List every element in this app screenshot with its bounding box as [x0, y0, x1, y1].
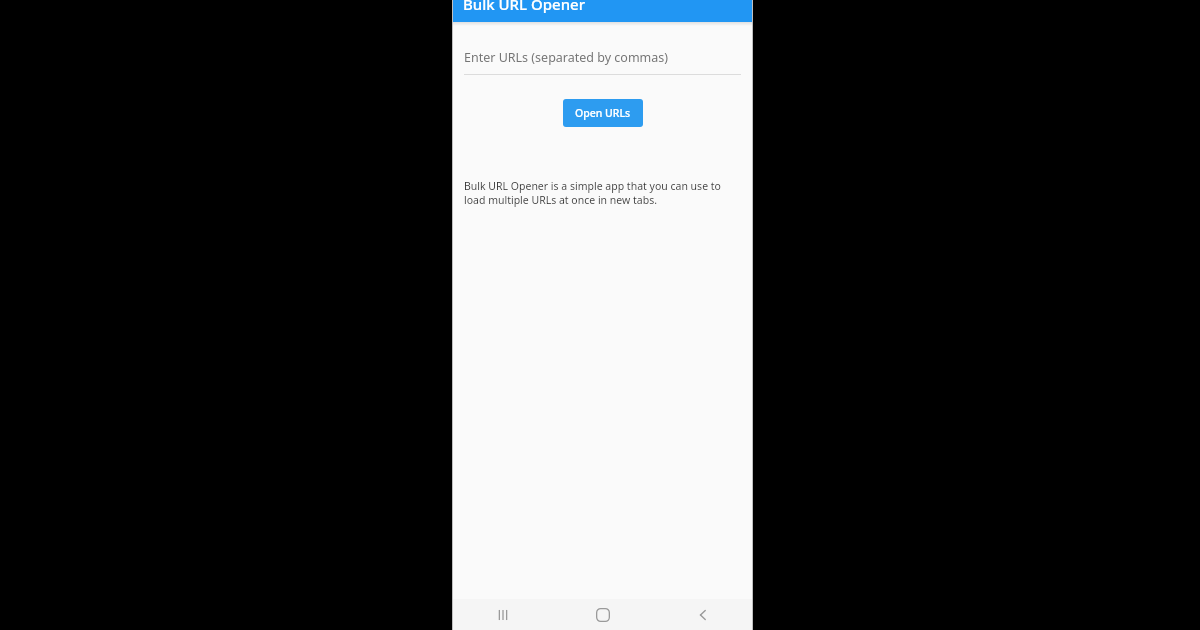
staticText: Enter URLs (separated by commas): [464, 49, 669, 66]
button[interactable]: Recent apps: [452, 599, 553, 630]
staticText: Open URLs: [575, 106, 631, 120]
button[interactable]: Home: [553, 599, 653, 630]
button[interactable]: Enter URLs (separated by commas): [464, 22, 741, 75]
staticText: Bulk URL Opener is a simple app that you…: [464, 179, 725, 207]
staticText: Bulk URL Opener: [463, 0, 586, 14]
button[interactable]: Bulk URL Opener: [452, 0, 753, 22]
button[interactable]: Back: [653, 599, 753, 630]
button[interactable]: Open URLs: [563, 99, 643, 127]
